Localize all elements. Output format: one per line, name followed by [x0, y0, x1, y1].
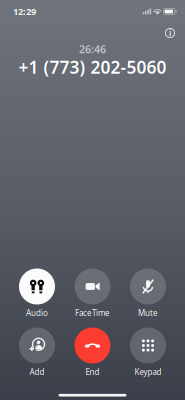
staticText: Keypad — [134, 367, 161, 377]
staticText: Audio — [26, 308, 48, 318]
button[interactable]: Keypad — [120, 327, 176, 376]
staticText: End — [85, 367, 99, 377]
button[interactable]: Audio — [9, 268, 65, 317]
button[interactable]: Call details — [157, 20, 183, 46]
button[interactable]: Add — [9, 327, 65, 376]
button[interactable]: Mute — [120, 268, 176, 317]
staticText: 26:46 — [79, 42, 106, 56]
staticText: +1 (773) 202-5060 — [18, 55, 166, 78]
staticText: FaceTime — [75, 308, 110, 318]
button[interactable]: End — [64, 327, 120, 376]
staticText: i — [169, 28, 171, 38]
button[interactable]: FaceTime — [64, 268, 120, 317]
staticText: 12:29 — [13, 5, 36, 18]
staticText: Mute — [138, 308, 158, 318]
staticText: Add — [29, 367, 44, 377]
